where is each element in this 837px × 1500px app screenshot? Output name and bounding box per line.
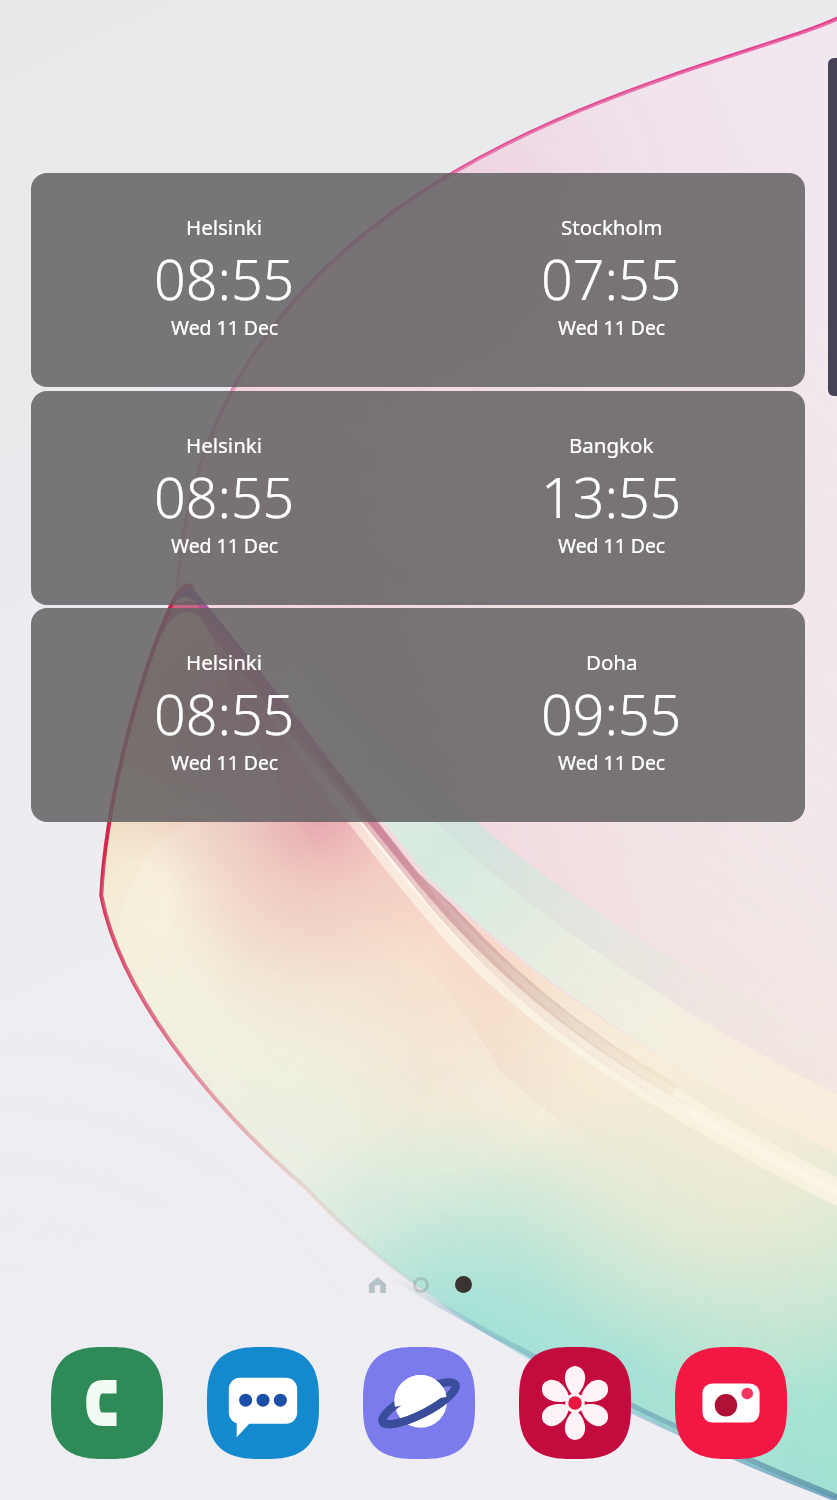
staticText: Stockholm xyxy=(561,213,663,241)
button[interactable]: Internet xyxy=(363,1347,475,1459)
staticText: 09:55 xyxy=(541,676,682,752)
staticText: 08:55 xyxy=(154,676,295,752)
button[interactable]: Page 1 xyxy=(413,1277,429,1293)
staticText: Wed 11 Dec xyxy=(171,314,279,340)
button[interactable]: Gallery xyxy=(519,1347,631,1459)
staticText: 07:55 xyxy=(541,241,682,317)
staticText: Wed 11 Dec xyxy=(558,532,666,558)
staticText: Doha xyxy=(586,648,638,676)
button[interactable]: Page 2 xyxy=(455,1276,472,1293)
staticText: 13:55 xyxy=(541,459,682,535)
staticText: Bangkok xyxy=(569,431,654,459)
button[interactable]: Helsinki xyxy=(31,608,805,822)
staticText: 08:55 xyxy=(154,459,295,535)
staticText: Wed 11 Dec xyxy=(171,532,279,558)
button[interactable]: Home screen xyxy=(369,1277,386,1293)
button[interactable]: Helsinki xyxy=(31,173,805,387)
staticText: Helsinki xyxy=(186,213,263,241)
staticText: 08:55 xyxy=(154,241,295,317)
staticText: Helsinki xyxy=(186,431,263,459)
staticText: Helsinki xyxy=(186,648,263,676)
button[interactable]: Helsinki xyxy=(31,391,805,605)
button[interactable]: Messages xyxy=(207,1347,319,1459)
staticText: Wed 11 Dec xyxy=(558,749,666,775)
staticText: Wed 11 Dec xyxy=(171,749,279,775)
staticText: Wed 11 Dec xyxy=(558,314,666,340)
button[interactable]: Phone xyxy=(51,1347,163,1459)
button[interactable]: Edge panel xyxy=(828,58,837,396)
button[interactable]: Camera xyxy=(675,1347,787,1459)
